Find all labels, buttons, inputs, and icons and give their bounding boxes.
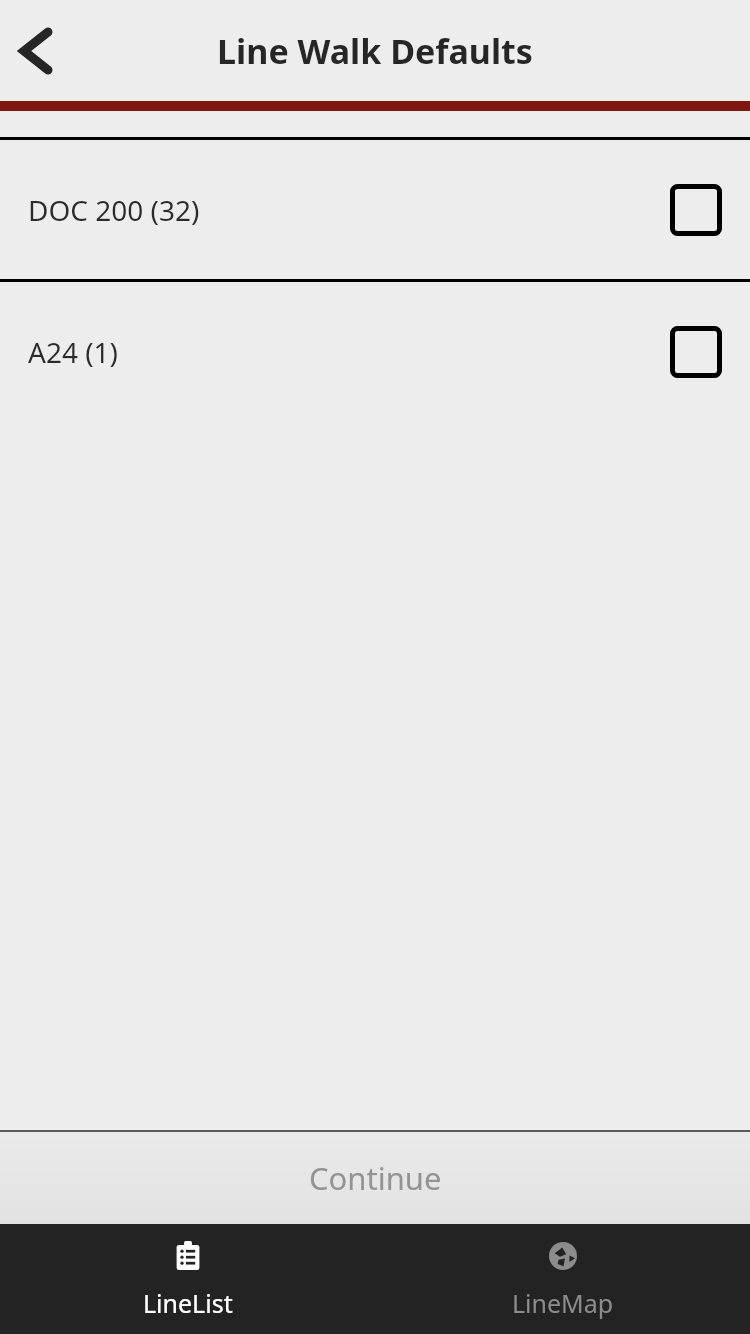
staticText: A24 (1): [28, 333, 670, 371]
button[interactable]: Select DOC 200 (32): [670, 184, 722, 236]
button[interactable]: LineMap: [375, 1224, 750, 1334]
staticText: LineMap: [512, 1286, 614, 1320]
staticText: Continue: [309, 1157, 442, 1199]
staticText: LineList: [143, 1286, 233, 1320]
button[interactable]: LineList: [0, 1224, 375, 1334]
staticText: Line Walk Defaults: [217, 28, 533, 74]
button[interactable]: DOC 200 (32): [0, 140, 750, 279]
button[interactable]: A24 (1): [0, 282, 750, 421]
button[interactable]: Continue: [0, 1132, 750, 1224]
button[interactable]: Select A24 (1): [670, 326, 722, 378]
button[interactable]: Back: [0, 15, 71, 87]
staticText: DOC 200 (32): [28, 191, 670, 229]
